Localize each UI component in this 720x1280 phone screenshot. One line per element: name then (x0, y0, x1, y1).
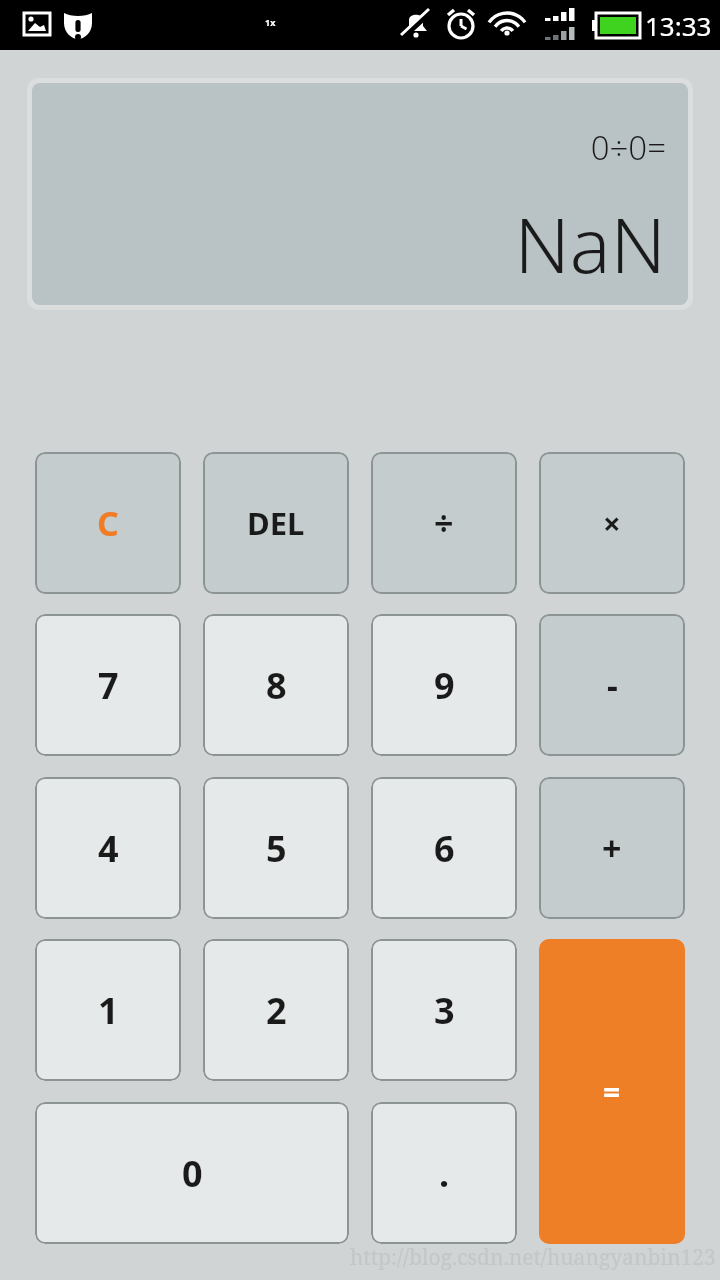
button[interactable]: 8 (203, 614, 349, 756)
staticText: 9 (434, 661, 455, 710)
button[interactable]: 9 (371, 614, 517, 756)
staticText: - (607, 662, 618, 708)
staticText: × (603, 502, 621, 544)
staticText: 4 (98, 824, 119, 873)
staticText: C (97, 500, 119, 546)
button[interactable]: C (35, 452, 181, 594)
staticText: . (439, 1149, 450, 1198)
button[interactable]: 5 (203, 777, 349, 919)
staticText: 0÷0= (590, 125, 666, 170)
staticText: http://blog.csdn.net/huangyanbin123 (350, 1243, 716, 1272)
staticText: + (602, 825, 622, 871)
staticText: 1 (98, 986, 119, 1035)
button[interactable]: + (539, 777, 685, 919)
button[interactable]: 2 (203, 939, 349, 1081)
button[interactable]: = (539, 939, 685, 1244)
staticText: ÷ (434, 500, 454, 546)
button[interactable]: ÷ (371, 452, 517, 594)
button[interactable]: 4 (35, 777, 181, 919)
staticText: 13:33 (645, 8, 712, 43)
staticText: 0 (182, 1149, 203, 1198)
staticText: NaN (514, 192, 666, 296)
staticText: 8 (266, 661, 287, 710)
staticText: 3 (434, 986, 455, 1035)
staticText: 7 (98, 661, 119, 710)
button[interactable]: 0 (35, 1102, 349, 1244)
staticText: = (603, 1071, 621, 1112)
staticText: 6 (434, 824, 455, 873)
staticText: 1x (265, 16, 276, 28)
button[interactable]: 7 (35, 614, 181, 756)
staticText: 2 (266, 986, 287, 1035)
button[interactable]: 1 (35, 939, 181, 1081)
button[interactable]: 3 (371, 939, 517, 1081)
button[interactable]: - (539, 614, 685, 756)
staticText: DEL (247, 502, 305, 544)
button[interactable]: × (539, 452, 685, 594)
button[interactable]: DEL (203, 452, 349, 594)
staticText: 5 (266, 824, 287, 873)
button[interactable]: . (371, 1102, 517, 1244)
button[interactable]: 6 (371, 777, 517, 919)
